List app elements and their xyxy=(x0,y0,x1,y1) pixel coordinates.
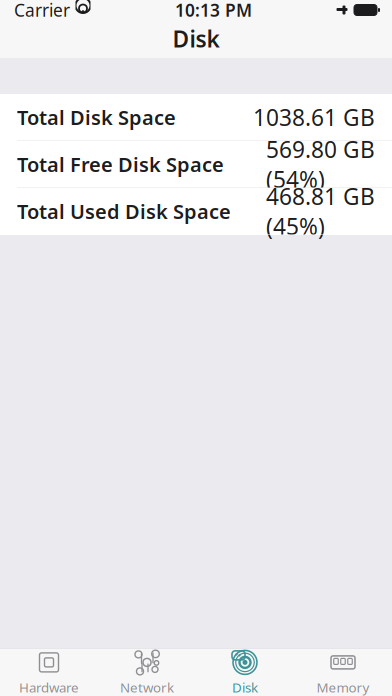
staticText: Disk xyxy=(232,678,258,696)
staticText: 569.80 GB (54%) xyxy=(266,134,375,194)
staticText: Carrier xyxy=(14,0,70,21)
button[interactable]: Network xyxy=(98,648,196,696)
button[interactable]: Total Used Disk Space xyxy=(0,188,392,235)
staticText: Network xyxy=(120,678,174,696)
staticText: 1038.61 GB xyxy=(253,102,375,132)
staticText: Hardware xyxy=(19,678,79,696)
button[interactable]: Total Free Disk Space xyxy=(0,141,392,188)
staticText: Total Free Disk Space xyxy=(17,151,224,178)
button[interactable]: Memory xyxy=(294,648,392,696)
staticText: 468.81 GB (45%) xyxy=(266,181,375,241)
button[interactable]: Hardware xyxy=(0,648,98,696)
button[interactable]: Disk xyxy=(196,648,294,696)
button[interactable]: Total Disk Space xyxy=(0,94,392,141)
staticText: 10:13 PM xyxy=(175,0,252,21)
staticText: Total Disk Space xyxy=(17,104,176,131)
staticText: Total Used Disk Space xyxy=(17,198,231,225)
staticText: Memory xyxy=(316,678,369,696)
staticText: Disk xyxy=(172,24,219,54)
